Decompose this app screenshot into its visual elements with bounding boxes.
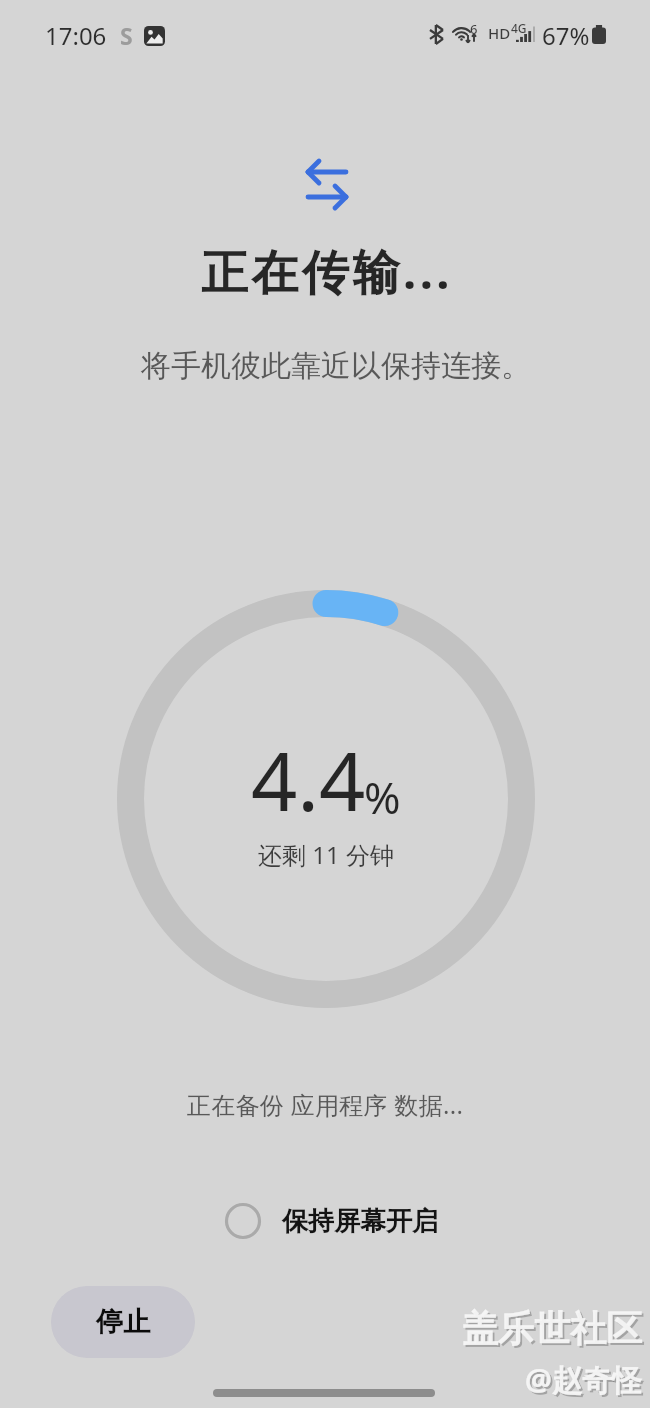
staticText: 正在传输...: [2, 239, 650, 303]
staticText: 停止: [96, 1305, 150, 1339]
staticText: 4.4: [251, 724, 366, 834]
staticText: S: [120, 20, 133, 51]
staticText: 盖乐世社区: [462, 1306, 642, 1351]
staticText: 17:06: [45, 19, 107, 52]
button[interactable]: 停止: [51, 1286, 195, 1358]
other: Transfer in progress: [304, 159, 350, 209]
staticText: 将手机彼此靠近以保持连接。: [11, 347, 650, 385]
staticText: %: [364, 767, 401, 827]
staticText: @赵奇怪: [527, 1361, 644, 1402]
staticText: 67%: [542, 19, 590, 45]
staticText: @赵奇怪: [525, 1359, 642, 1400]
staticText: 正在备份 应用程序 数据...: [0, 1088, 650, 1121]
button[interactable]: 保持屏幕开启: [217, 1197, 444, 1245]
staticText: 6: [470, 20, 478, 38]
staticText: 盖乐世社区: [464, 1308, 644, 1353]
staticText: HD: [488, 23, 511, 43]
staticText: 还剩 11 分钟: [117, 838, 535, 871]
staticText: 保持屏幕开启: [282, 1205, 438, 1238]
staticText: 4G: [511, 20, 527, 36]
